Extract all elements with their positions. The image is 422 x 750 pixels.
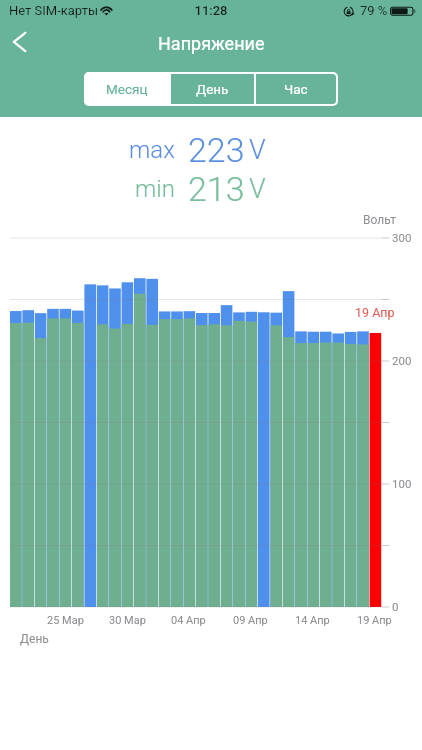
staticText: День (20, 632, 49, 646)
staticText: Месяц (106, 81, 148, 97)
staticText: 19 Апр (357, 614, 392, 627)
staticText: 25 Мар (47, 614, 84, 627)
staticText: V (249, 173, 266, 205)
staticText: min (135, 175, 175, 203)
staticText: 223 (188, 130, 245, 170)
staticText: 200 (392, 354, 412, 367)
staticText: 19 Апр (355, 305, 395, 320)
staticText: 30 Мар (109, 614, 146, 627)
staticText: 14 Апр (295, 614, 330, 627)
staticText: 213 (188, 169, 245, 209)
staticText: max (129, 136, 175, 164)
staticText: 11:28 (0, 3, 422, 18)
button[interactable]: Месяц (84, 72, 169, 106)
button[interactable]: Назад (0, 22, 44, 62)
staticText: 100 (392, 477, 412, 490)
staticText: Нет SIM-карты (9, 3, 99, 18)
staticText: 09 Апр (233, 614, 268, 627)
staticText: Час (284, 81, 308, 97)
staticText: Напряжение (158, 33, 265, 54)
staticText: 79 % (360, 3, 388, 18)
button[interactable]: День (171, 74, 254, 104)
staticText: 300 (392, 231, 412, 244)
staticText: Вольт (363, 213, 397, 227)
button[interactable]: Час (256, 74, 336, 104)
staticText: 0 (392, 600, 399, 613)
staticText: День (196, 81, 229, 97)
staticText: 04 Апр (171, 614, 206, 627)
staticText: V (249, 134, 266, 166)
